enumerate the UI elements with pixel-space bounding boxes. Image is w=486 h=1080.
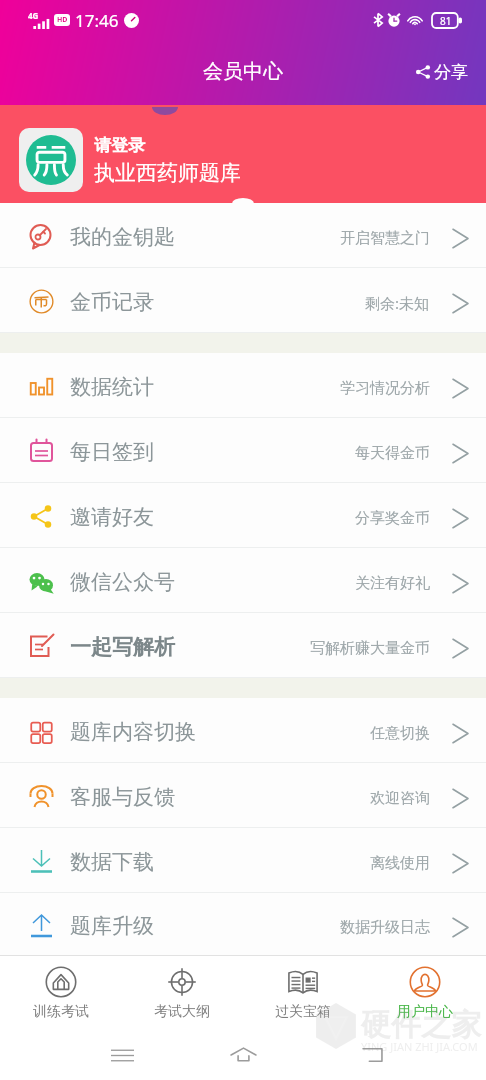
staticText: 邀请好友 — [70, 504, 154, 530]
staticText: 开启智慧之门 — [340, 229, 430, 248]
staticText: 会员中心 — [203, 59, 283, 84]
staticText: 用户中心 — [397, 1003, 453, 1021]
staticText: 关注有好礼 — [355, 574, 430, 593]
button[interactable]: Back — [332, 1030, 412, 1080]
button[interactable]: 用户中心 — [364, 956, 486, 1030]
staticText: 数据升级日志 — [340, 918, 430, 937]
button[interactable]: 邀请好友 — [0, 483, 486, 547]
staticText: 金币记录 — [70, 289, 154, 315]
staticText: 81 — [440, 14, 452, 28]
staticText: 欢迎咨询 — [370, 789, 430, 808]
staticText: 剩余:未知 — [365, 293, 430, 313]
staticText: 分享奖金币 — [355, 509, 430, 528]
staticText: 17:46 — [75, 9, 119, 32]
staticText: 任意切换 — [370, 724, 430, 743]
staticText: 训练考试 — [33, 1003, 89, 1021]
staticText: HD — [57, 15, 68, 25]
staticText: 题库内容切换 — [70, 719, 196, 745]
staticText: 每日签到 — [70, 439, 154, 465]
button[interactable]: 题库升级 — [0, 893, 486, 955]
button[interactable]: 微信公众号 — [0, 548, 486, 612]
button[interactable]: 一起写解析 — [0, 613, 486, 677]
staticText: 题库升级 — [70, 913, 154, 939]
button[interactable]: 数据下载 — [0, 828, 486, 892]
staticText: 离线使用 — [370, 854, 430, 873]
staticText: 数据统计 — [70, 374, 154, 400]
staticText: 数据下载 — [70, 849, 154, 875]
staticText: 4G — [28, 10, 39, 21]
button[interactable]: 客服与反馈 — [0, 763, 486, 827]
staticText: 考试大纲 — [154, 1003, 210, 1021]
button[interactable]: 分享 — [399, 51, 486, 92]
button[interactable]: 请登录 — [0, 111, 486, 209]
staticText: YING JIAN ZHI JIA.COM — [361, 1039, 478, 1054]
button[interactable]: 每日签到 — [0, 418, 486, 482]
button[interactable]: 我的金钥匙 — [0, 203, 486, 267]
button[interactable]: 过关宝箱 — [242, 956, 364, 1030]
button[interactable]: 会员中心 — [203, 59, 283, 84]
staticText: 一起写解析 — [70, 634, 175, 660]
staticText: 硬件之家 — [361, 1006, 481, 1044]
button[interactable]: 金币记录 — [0, 268, 486, 332]
staticText: 学习情况分析 — [340, 379, 430, 398]
staticText: 写解析赚大量金币 — [310, 639, 430, 658]
staticText: 执业西药师题库 — [94, 160, 241, 186]
staticText: 分享 — [434, 62, 468, 83]
button[interactable]: 考试大纲 — [121, 956, 242, 1030]
staticText: 请登录 — [94, 135, 145, 156]
staticText: 我的金钥匙 — [70, 224, 175, 250]
button[interactable]: Recent apps — [82, 1030, 162, 1080]
button[interactable]: 训练考试 — [0, 956, 121, 1030]
button[interactable]: Home — [203, 1030, 283, 1080]
staticText: 微信公众号 — [70, 569, 175, 595]
button[interactable]: 数据统计 — [0, 353, 486, 417]
staticText: 每天得金币 — [355, 444, 430, 463]
staticText: 客服与反馈 — [70, 784, 175, 810]
staticText: 过关宝箱 — [275, 1003, 331, 1021]
button[interactable]: 题库内容切换 — [0, 698, 486, 762]
